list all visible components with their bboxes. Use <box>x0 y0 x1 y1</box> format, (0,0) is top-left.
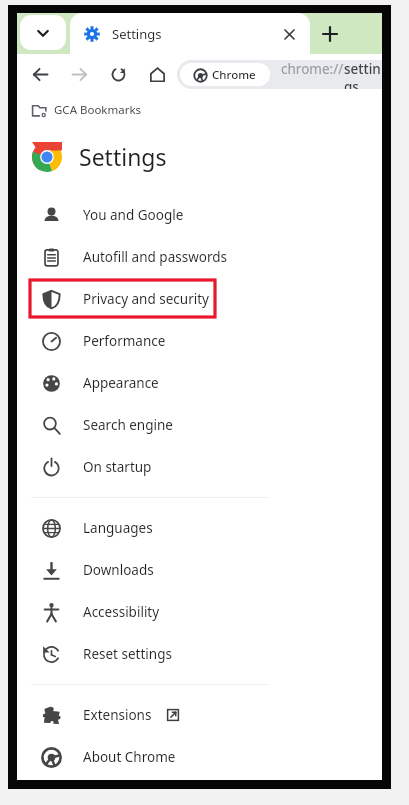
staticText: On startup <box>83 458 152 476</box>
button[interactable]: Reload <box>99 54 138 94</box>
staticText: Search engine <box>83 416 173 434</box>
staticText: chrome:// <box>281 60 344 78</box>
button[interactable]: Reset settings <box>17 633 382 675</box>
button[interactable]: About Chrome <box>17 736 382 778</box>
staticText: Extensions <box>83 706 152 724</box>
button[interactable]: Downloads <box>17 549 382 591</box>
button[interactable]: Chrome <box>177 60 382 89</box>
staticText: Chrome <box>212 67 256 83</box>
button[interactable]: GCA Bookmarks <box>29 99 145 121</box>
staticText: Reset settings <box>83 645 172 663</box>
button[interactable]: Languages <box>17 507 382 549</box>
staticText: Privacy and security <box>83 290 209 308</box>
button[interactable]: Close tab <box>278 23 300 45</box>
button[interactable]: Extensions <box>17 694 382 736</box>
button[interactable]: Search tabs <box>20 15 66 50</box>
staticText: Performance <box>83 332 166 350</box>
staticText: settings <box>344 60 382 89</box>
button[interactable]: Forward <box>60 54 99 94</box>
staticText: You and Google <box>83 206 184 224</box>
button[interactable]: New tab <box>314 13 346 54</box>
staticText: About Chrome <box>83 748 176 766</box>
staticText: Settings <box>112 25 162 43</box>
button[interactable]: Back <box>21 54 60 94</box>
staticText: Settings <box>79 141 167 172</box>
button[interactable]: Appearance <box>17 362 382 404</box>
staticText: Appearance <box>83 374 159 392</box>
button[interactable]: Accessibility <box>17 591 382 633</box>
button[interactable]: Settings <box>70 13 310 54</box>
button[interactable]: Autofill and passwords <box>17 236 382 278</box>
button[interactable]: Privacy and security <box>17 278 382 320</box>
staticText: Autofill and passwords <box>83 248 228 266</box>
staticText: Languages <box>83 519 153 537</box>
button[interactable]: Performance <box>17 320 382 362</box>
button[interactable]: Home <box>138 54 177 94</box>
staticText: Downloads <box>83 561 154 579</box>
button[interactable]: Search engine <box>17 404 382 446</box>
button[interactable]: On startup <box>17 446 382 488</box>
staticText: Accessibility <box>83 603 160 621</box>
button[interactable]: You and Google <box>17 194 382 236</box>
staticText: GCA Bookmarks <box>54 102 142 118</box>
